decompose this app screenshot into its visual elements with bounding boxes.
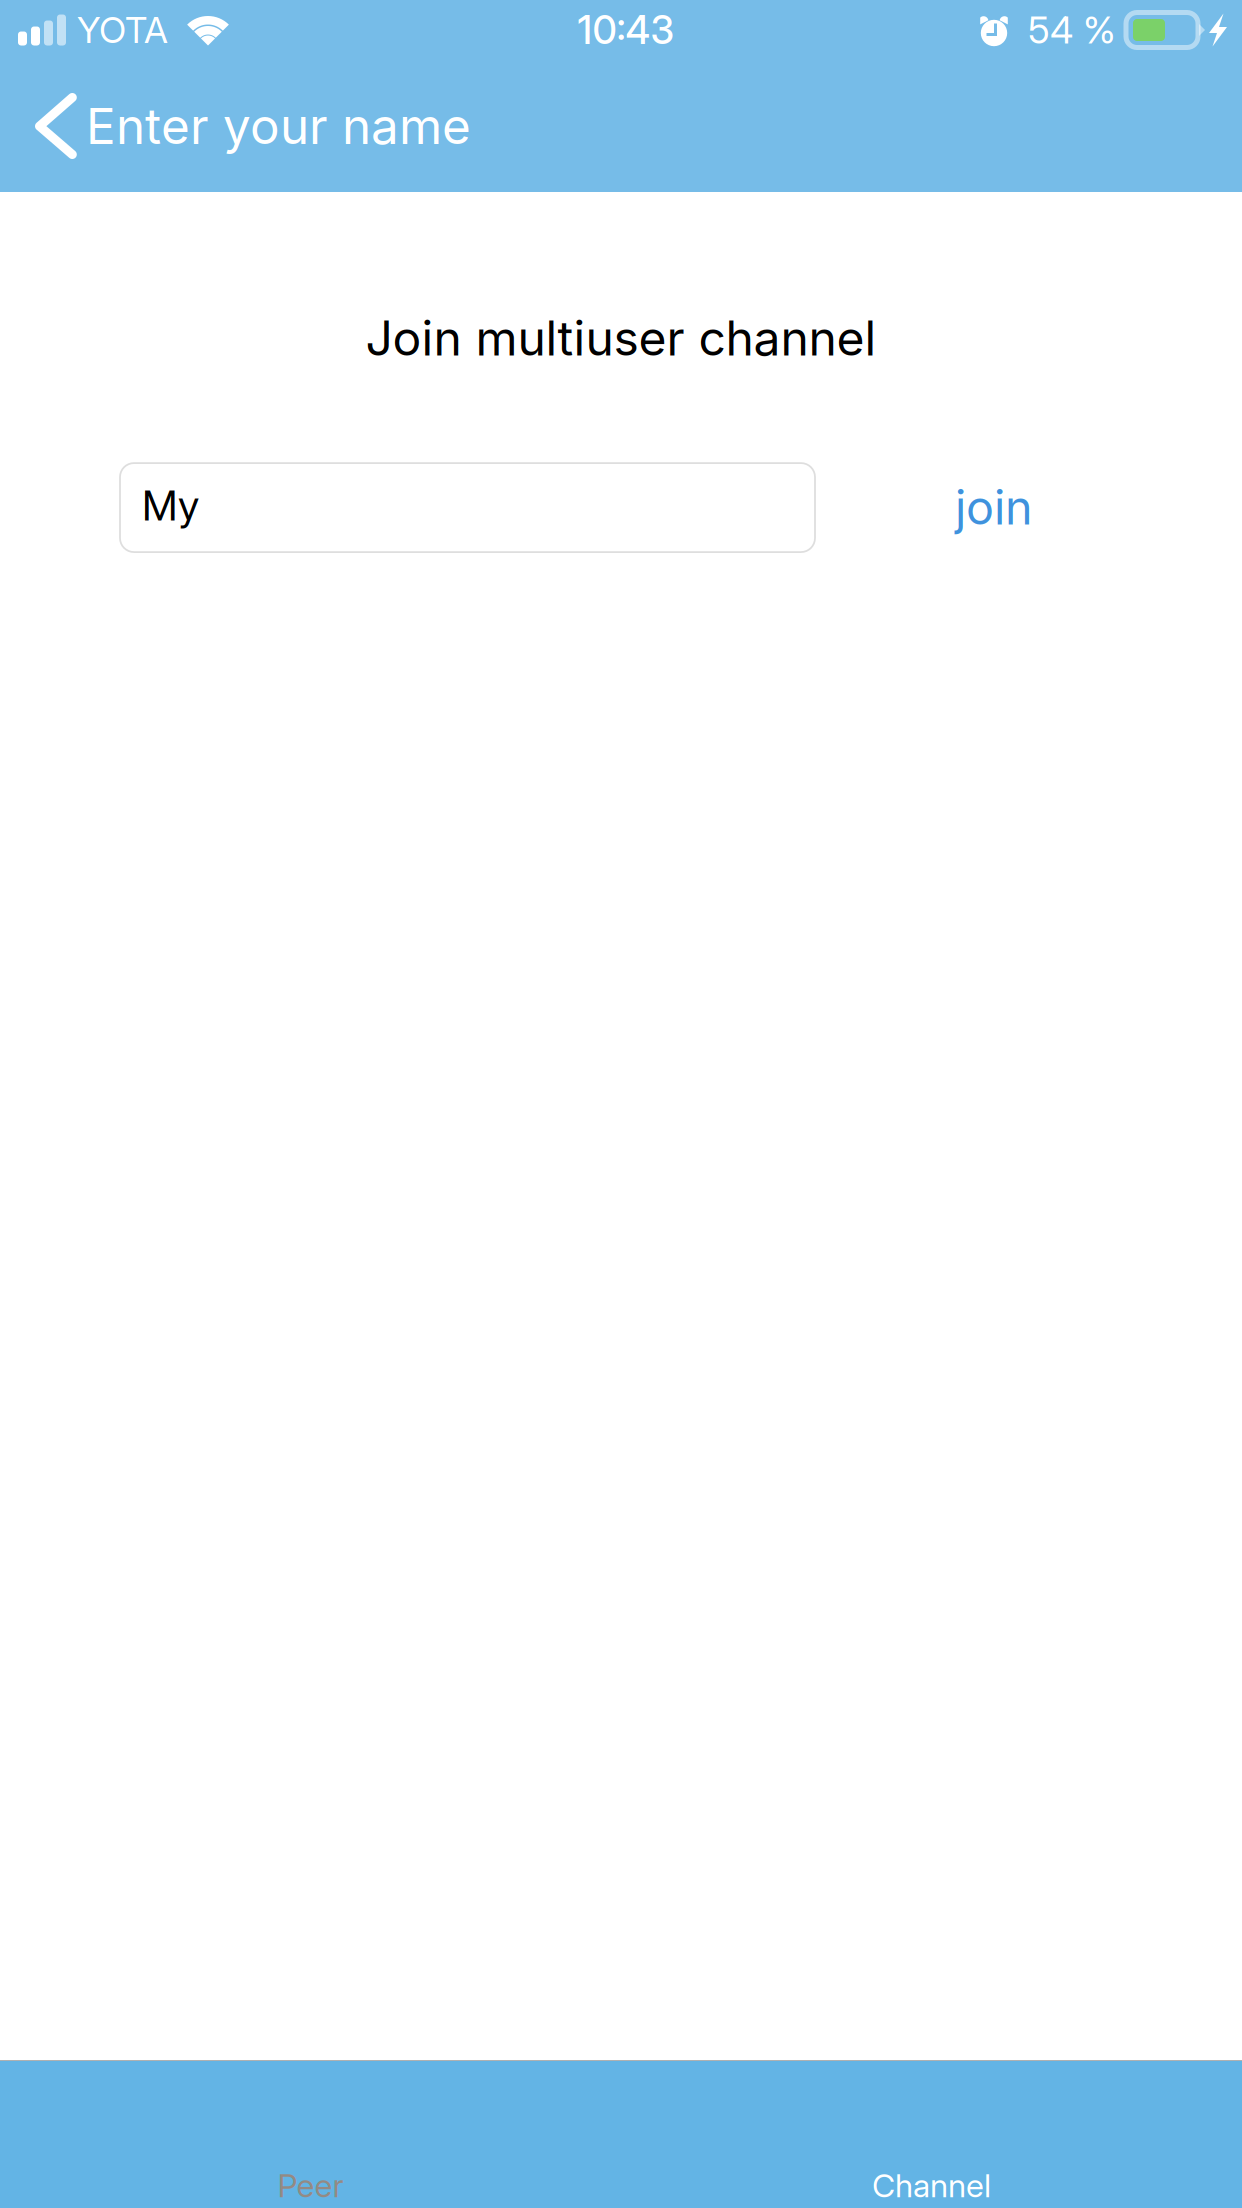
staticText: 10:43 [577, 7, 674, 53]
staticText: Peer [277, 2166, 343, 2205]
staticText: Channel [872, 2166, 991, 2205]
staticText: My [142, 481, 199, 531]
staticText: Join multiuser channel [365, 309, 876, 367]
staticText: Enter your name [86, 96, 471, 156]
staticText: YOTA [77, 8, 168, 52]
button[interactable]: Peer [0, 2061, 621, 2208]
button[interactable]: Channel [621, 2061, 1242, 2208]
button[interactable]: Enter your name [0, 60, 495, 192]
staticText: 54 % [1028, 7, 1116, 53]
button[interactable]: My [120, 463, 815, 552]
staticText: join [955, 479, 1033, 536]
button[interactable]: join [925, 463, 1063, 552]
